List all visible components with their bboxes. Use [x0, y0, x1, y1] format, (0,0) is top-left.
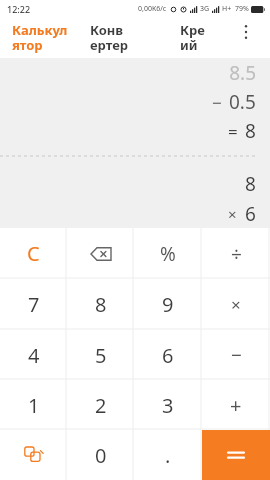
staticText: 8 — [95, 291, 107, 318]
staticText: 5 — [95, 342, 107, 369]
button[interactable]: % — [134, 228, 202, 279]
staticText: 0.5 — [229, 89, 256, 115]
staticText: 9 — [162, 291, 174, 318]
staticText: × — [231, 293, 241, 316]
button[interactable]: 7 — [0, 279, 67, 330]
staticText: % — [160, 241, 176, 267]
staticText: 2 — [95, 392, 107, 419]
staticText: + — [230, 392, 242, 419]
button[interactable]: Equals — [202, 430, 270, 480]
button[interactable]: 0 — [67, 430, 134, 480]
button[interactable]: ÷ — [202, 228, 270, 279]
button[interactable]: 9 — [134, 279, 202, 330]
button[interactable]: 2 — [67, 380, 134, 430]
button[interactable]: 1 — [0, 380, 67, 430]
staticText: 79% — [235, 4, 249, 14]
button[interactable]: Convert — [0, 430, 67, 480]
staticText: 3 — [162, 392, 174, 419]
staticText: 6 — [162, 342, 174, 369]
staticText: ÷ — [231, 241, 242, 267]
button[interactable]: Конв ертер — [90, 18, 180, 58]
staticText: 12:22 — [7, 3, 31, 15]
staticText: = — [228, 120, 238, 143]
staticText: − — [212, 91, 222, 114]
staticText: 4 — [28, 342, 40, 369]
button[interactable]: + — [202, 380, 270, 430]
staticText: . — [165, 442, 171, 469]
button[interactable]: 4 — [0, 330, 67, 380]
button[interactable]: Калькул ятор — [12, 18, 90, 58]
staticText: 8.5 — [229, 60, 256, 86]
button[interactable]: Кре ий — [180, 18, 270, 58]
button[interactable]: − — [202, 330, 270, 380]
staticText: 1 — [28, 392, 40, 419]
button[interactable]: Backspace — [67, 228, 134, 279]
staticText: Кре ий — [180, 21, 205, 54]
staticText: 3G — [200, 4, 210, 14]
staticText: 8 — [245, 118, 256, 144]
staticText: 7 — [28, 291, 40, 318]
staticText: × — [228, 204, 237, 224]
staticText: H+ — [222, 4, 232, 14]
staticText: 6 — [245, 201, 256, 227]
button[interactable]: 5 — [67, 330, 134, 380]
button[interactable]: × — [202, 279, 270, 330]
button[interactable]: 3 — [134, 380, 202, 430]
button[interactable]: 8 — [67, 279, 134, 330]
button[interactable]: More options — [244, 24, 248, 40]
staticText: 0 — [95, 442, 107, 469]
staticText: − — [231, 342, 242, 368]
staticText: Конв ертер — [90, 21, 128, 54]
staticText: Калькул ятор — [12, 21, 68, 54]
button[interactable]: . — [134, 430, 202, 480]
staticText: C — [27, 240, 40, 267]
button[interactable]: 6 — [134, 330, 202, 380]
staticText: 0,00K6/c — [138, 4, 167, 14]
staticText: 8 — [245, 171, 256, 197]
button[interactable]: C — [0, 228, 67, 279]
